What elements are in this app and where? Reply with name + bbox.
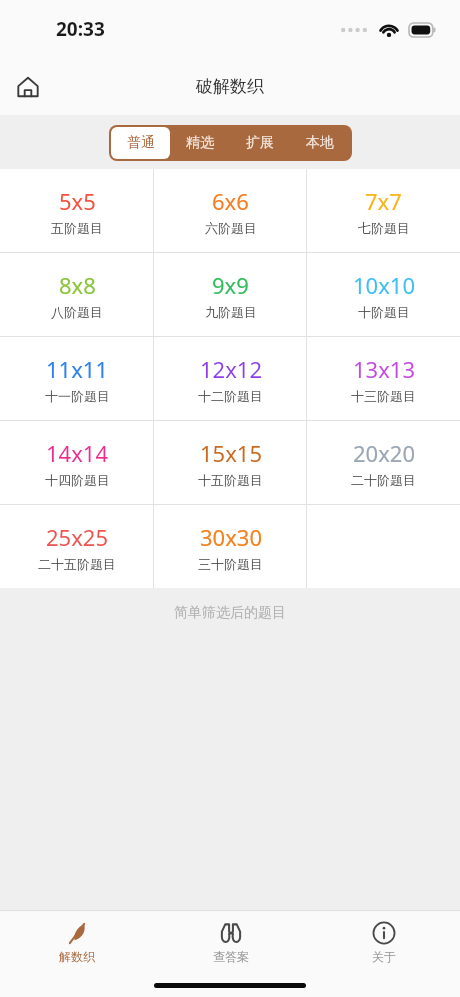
staticText: 12x12 [200, 354, 262, 384]
button[interactable]: 关于 [307, 911, 460, 973]
staticText: 二十阶题目 [351, 472, 416, 488]
button[interactable]: 7x7 [307, 169, 460, 252]
staticText: 普通 [127, 134, 155, 152]
staticText: 七阶题目 [358, 220, 410, 236]
staticText: 9x9 [212, 270, 249, 300]
staticText: 精选 [186, 134, 214, 152]
button[interactable]: Home [6, 65, 50, 109]
button[interactable]: 20x20 [307, 421, 460, 504]
staticText: 13x13 [353, 354, 415, 384]
button[interactable]: 9x9 [154, 253, 307, 336]
staticText: 破解数织 [196, 76, 264, 97]
staticText: 30x30 [200, 522, 262, 552]
button[interactable]: 25x25 [0, 505, 154, 588]
staticText: 查答案 [213, 949, 249, 964]
button[interactable]: 精选 [170, 127, 230, 159]
button[interactable]: 扩展 [230, 127, 290, 159]
button[interactable]: 6x6 [154, 169, 307, 252]
staticText: 7x7 [365, 186, 402, 216]
button[interactable]: 普通 [111, 127, 170, 159]
staticText: 关于 [372, 949, 396, 964]
staticText: 扩展 [246, 134, 274, 152]
staticText: 十二阶题目 [198, 388, 263, 404]
staticText: 10x10 [353, 270, 415, 300]
staticText: 15x15 [200, 438, 262, 468]
staticText: 二十五阶题目 [38, 556, 116, 572]
button[interactable]: 15x15 [154, 421, 307, 504]
button[interactable]: 13x13 [307, 337, 460, 420]
button[interactable]: 12x12 [154, 337, 307, 420]
staticText: 三十阶题目 [198, 556, 263, 572]
button[interactable]: 查答案 [154, 911, 307, 973]
staticText: 九阶题目 [205, 304, 257, 320]
button[interactable]: 14x14 [0, 421, 154, 504]
staticText: 解数织 [59, 949, 95, 964]
button[interactable]: 本地 [290, 127, 350, 159]
staticText: 14x14 [46, 438, 108, 468]
staticText: 11x11 [46, 354, 108, 384]
staticText: 5x5 [59, 186, 96, 216]
staticText: 本地 [306, 134, 334, 152]
staticText: 十一阶题目 [45, 388, 110, 404]
button[interactable]: 30x30 [154, 505, 307, 588]
staticText: 十四阶题目 [45, 472, 110, 488]
button[interactable]: 8x8 [0, 253, 154, 336]
staticText: 六阶题目 [205, 220, 257, 236]
staticText: 十阶题目 [358, 304, 410, 320]
staticText: 十五阶题目 [198, 472, 263, 488]
staticText: 十三阶题目 [351, 388, 416, 404]
staticText: 简单筛选后的题目 [0, 604, 460, 622]
button[interactable]: 11x11 [0, 337, 154, 420]
staticText: 6x6 [212, 186, 249, 216]
staticText: 五阶题目 [51, 220, 103, 236]
staticText: 25x25 [46, 522, 108, 552]
staticText: 20:33 [56, 16, 105, 42]
staticText: 八阶题目 [51, 304, 103, 320]
staticText: 20x20 [353, 438, 415, 468]
button[interactable]: 解数织 [0, 911, 154, 973]
button[interactable]: 10x10 [307, 253, 460, 336]
button[interactable]: 5x5 [0, 169, 154, 252]
staticText: 8x8 [59, 270, 96, 300]
